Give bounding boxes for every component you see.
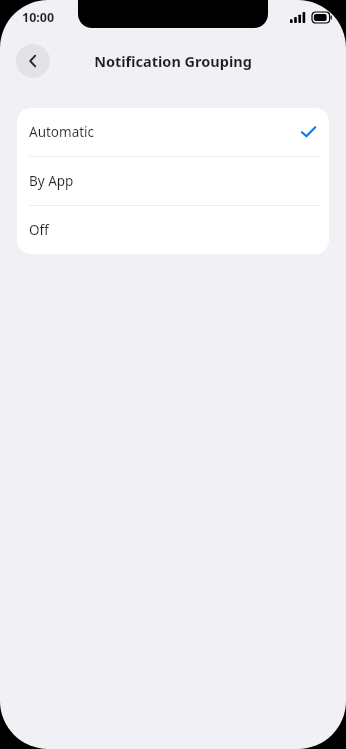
staticText: Notification Grouping [94, 51, 252, 71]
button[interactable]: Off [17, 206, 329, 254]
button[interactable]: Automatic [17, 108, 329, 156]
button[interactable]: Back [16, 44, 50, 78]
button[interactable]: By App [17, 157, 329, 205]
staticText: Automatic [29, 123, 95, 141]
staticText: 10:00 [22, 9, 55, 26]
staticText: By App [29, 172, 74, 190]
staticText: Off [29, 221, 49, 239]
